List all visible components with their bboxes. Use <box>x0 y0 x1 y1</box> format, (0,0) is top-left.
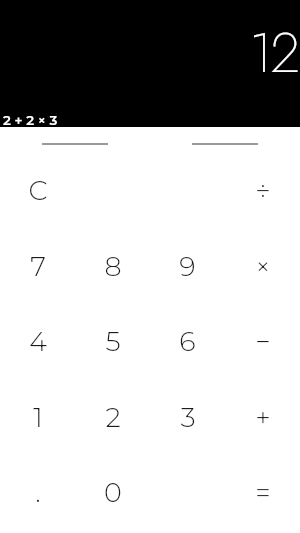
staticText: 1 <box>33 401 43 434</box>
button[interactable]: Clear <box>0 152 75 228</box>
button[interactable]: Decimal point <box>0 454 75 530</box>
staticText: 9 <box>179 250 196 283</box>
staticText: 5 <box>105 325 121 358</box>
button[interactable]: 8 <box>75 228 150 304</box>
button[interactable]: 9 <box>150 228 225 304</box>
staticText: − <box>255 325 271 358</box>
staticText: 2 + 2 × 3 <box>3 112 58 128</box>
button[interactable]: 7 <box>0 228 75 304</box>
button[interactable]: Multiply <box>225 228 300 304</box>
staticText: 2 <box>105 401 121 434</box>
staticText: 4 <box>29 325 47 358</box>
button[interactable]: 6 <box>150 303 225 379</box>
button[interactable]: Plus <box>225 379 300 455</box>
staticText: + <box>255 401 271 434</box>
staticText: . <box>35 476 41 509</box>
staticText: 3 <box>180 401 196 434</box>
staticText: 6 <box>179 325 196 358</box>
staticText: × <box>255 250 271 283</box>
button[interactable]: Equals <box>225 454 300 530</box>
button[interactable]: Minus <box>225 303 300 379</box>
staticText: 0 <box>104 476 122 509</box>
button[interactable]: 5 <box>75 303 150 379</box>
button[interactable]: 2 <box>75 379 150 455</box>
button[interactable]: 1 <box>0 379 75 455</box>
staticText: 7 <box>30 250 46 283</box>
staticText: = <box>255 476 271 509</box>
staticText: C <box>28 174 48 207</box>
button[interactable]: 0 <box>75 454 150 530</box>
button[interactable]: Divide <box>225 152 300 228</box>
staticText: 12 <box>249 13 299 92</box>
button[interactable]: 3 <box>150 379 225 455</box>
button[interactable]: 4 <box>0 303 75 379</box>
staticText: ÷ <box>255 174 271 207</box>
staticText: 8 <box>104 250 122 283</box>
